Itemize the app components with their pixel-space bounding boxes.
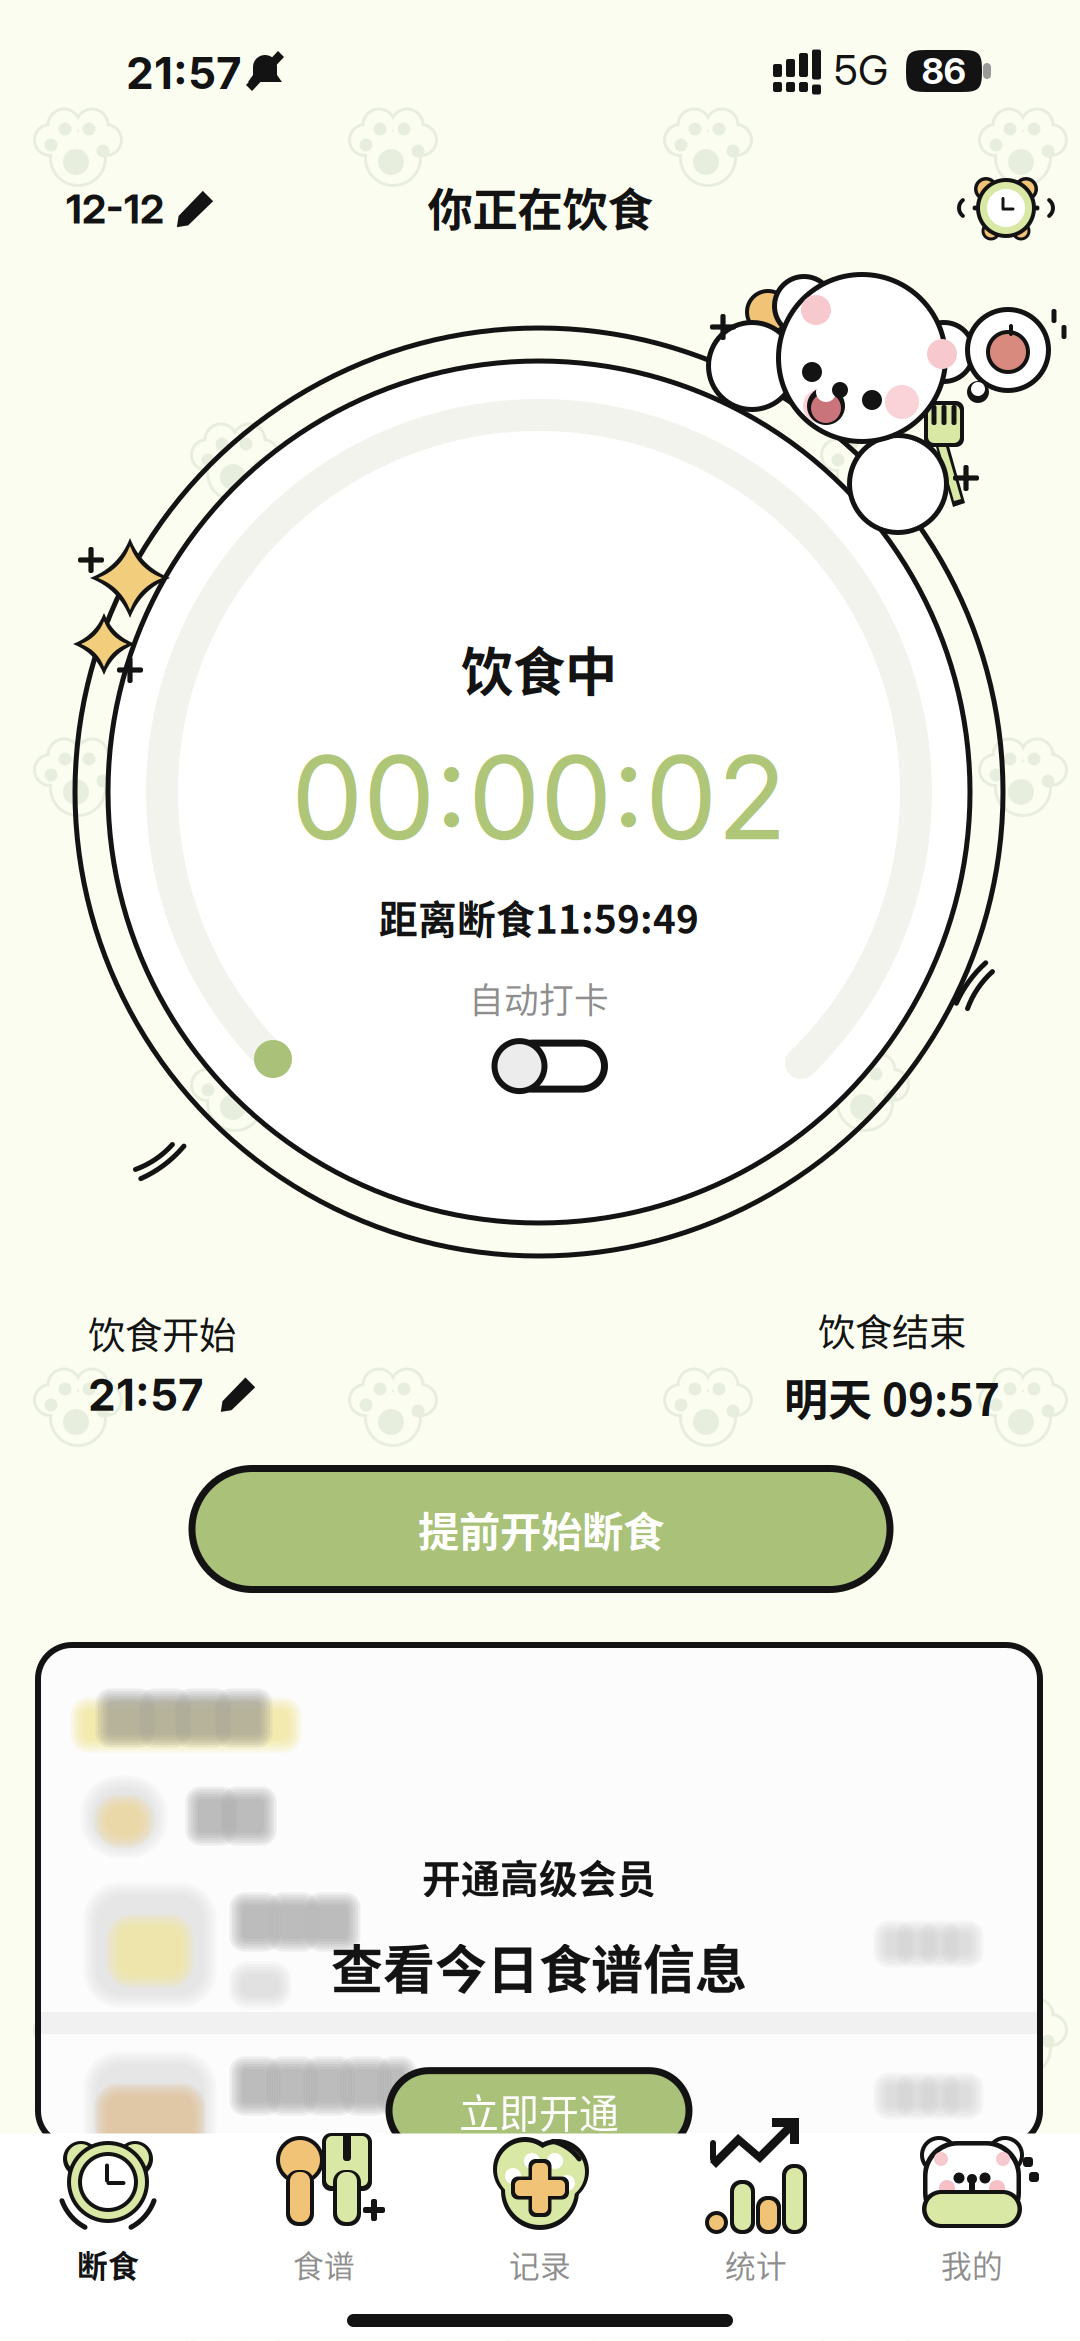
staticText: 记录 <box>509 2242 571 2286</box>
staticText: 饮食开始 <box>88 1306 236 1360</box>
button[interactable]: 食谱 <box>216 2136 432 2314</box>
staticText: 开通高级会员 <box>422 1848 656 1904</box>
staticText: 5G <box>834 45 888 95</box>
staticText: 距离断食11:59:49 <box>379 889 699 945</box>
button[interactable]: 立即开通 <box>392 2074 686 2148</box>
button[interactable]: 12-12 <box>54 167 226 251</box>
button[interactable]: 21:57 <box>88 1368 256 1421</box>
staticText: 00:00:02 <box>291 728 787 867</box>
staticText: 食谱 <box>293 2242 355 2286</box>
staticText: 21:57 <box>88 1368 204 1421</box>
staticText: 21:57 <box>126 46 242 100</box>
staticText: 12-12 <box>66 185 164 233</box>
button[interactable]: 断食 <box>0 2136 216 2314</box>
staticText: 统计 <box>725 2242 787 2286</box>
staticText: 断食 <box>77 2242 139 2286</box>
button[interactable]: 自动打卡开关 <box>480 1035 598 1097</box>
staticText: 86 <box>921 49 966 93</box>
button[interactable]: 提前开始断食 <box>195 1471 887 1586</box>
button[interactable]: 统计 <box>648 2136 864 2314</box>
staticText: 自动打卡 <box>469 973 609 1023</box>
staticText: 提前开始断食 <box>418 1499 664 1559</box>
staticText: 立即开通 <box>459 2082 619 2140</box>
staticText: 你正在饮食 <box>427 174 652 240</box>
staticText: 我的 <box>941 2242 1003 2286</box>
button[interactable]: 我的 <box>864 2136 1080 2314</box>
button[interactable]: 闹钟提醒 <box>960 164 1052 252</box>
staticText: 明天 09:57 <box>784 1365 1000 1429</box>
staticText: 饮食结束 <box>818 1303 966 1357</box>
button[interactable]: 记录 <box>432 2136 648 2314</box>
staticText: 查看今日食谱信息 <box>331 1928 747 2004</box>
staticText: 饮食中 <box>461 631 617 706</box>
